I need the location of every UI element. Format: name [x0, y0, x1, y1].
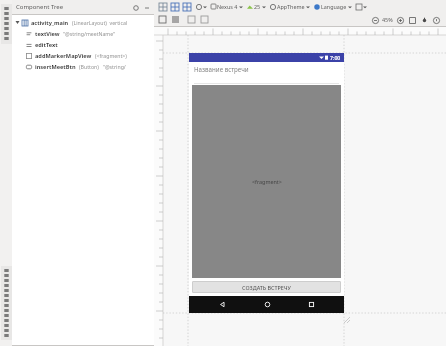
staticText: textView: [35, 30, 60, 38]
staticText: Component Tree: [16, 3, 64, 11]
button[interactable]: Theme: [270, 1, 310, 12]
button[interactable]: Palette: [1, 4, 12, 44]
staticText: 45%: [382, 16, 393, 23]
staticText: editText: [35, 41, 58, 49]
staticText: 7:00: [330, 54, 341, 61]
button[interactable]: Language: [314, 1, 352, 12]
staticText: (<fragment>) com.google.a…: [95, 52, 152, 59]
staticText: addMarkerMapView: [35, 52, 92, 60]
button[interactable]: Device: [211, 1, 243, 12]
staticText: 25: [254, 3, 261, 10]
button[interactable]: Pan: [419, 15, 429, 25]
button[interactable]: Show constraints: [157, 14, 168, 25]
button[interactable]: Autoconnect: [170, 14, 181, 25]
staticText: СОЗДАТЬ ВСТРЕЧУ: [242, 284, 291, 291]
button[interactable]: Collapse: [142, 3, 151, 12]
staticText: (LinearLayout) vertical: [72, 19, 128, 26]
staticText: Название встречи: [194, 65, 249, 73]
button[interactable]: editText: [12, 39, 154, 50]
button[interactable]: Recents: [299, 296, 323, 313]
button[interactable]: СОЗДАТЬ ВСТРЕЧУ: [192, 281, 341, 293]
staticText: Nexus 4: [217, 3, 238, 10]
button[interactable]: Orientation: [196, 1, 207, 12]
button[interactable]: Clear constraints: [186, 14, 197, 25]
staticText: insertMeetBtn: [35, 63, 76, 71]
button[interactable]: Home: [255, 296, 279, 313]
button[interactable]: API level: [247, 1, 266, 12]
button[interactable]: Blueprint mode: [169, 1, 180, 12]
button[interactable]: Settings: [131, 3, 140, 12]
button[interactable]: insertMeetBtn: [12, 61, 154, 72]
staticText: <fragment>: [252, 178, 282, 185]
button[interactable]: Infer constraints: [199, 14, 210, 25]
button[interactable]: Layout variants: [356, 1, 367, 12]
button[interactable]: activity_main: [12, 17, 154, 28]
staticText: activity_main: [31, 19, 69, 27]
button[interactable]: Zoom out: [370, 15, 380, 25]
staticText: AppTheme: [277, 3, 305, 10]
button[interactable]: addMarkerMapView: [12, 50, 154, 61]
staticText: (Button) "@string/createMeet": [79, 63, 152, 70]
button[interactable]: Component Tree: [1, 266, 12, 340]
staticText: "@string/meetName": [63, 30, 116, 37]
button[interactable]: Both modes: [181, 1, 192, 12]
staticText: Language: [321, 3, 347, 10]
button[interactable]: Design mode: [157, 1, 168, 12]
button[interactable]: Warnings: [431, 15, 441, 25]
button[interactable]: Zoom to fit: [407, 15, 417, 25]
button[interactable]: Back: [210, 296, 234, 313]
button[interactable]: Zoom in: [395, 15, 405, 25]
button[interactable]: textView: [12, 28, 154, 39]
